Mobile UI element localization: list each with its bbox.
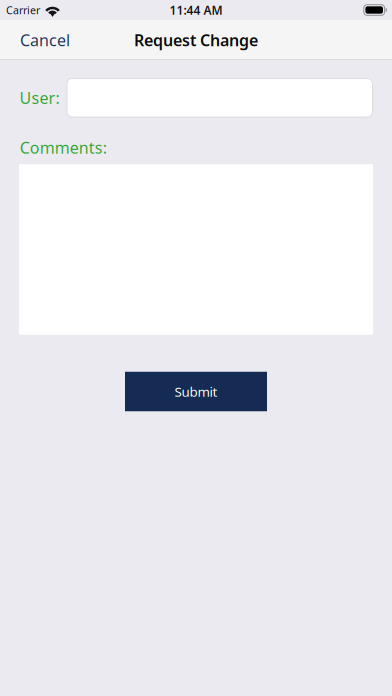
button[interactable]: Cancel	[0, 18, 84, 62]
staticText: Cancel	[20, 29, 70, 51]
staticText: 11:44 AM	[169, 2, 222, 18]
staticText: Carrier	[6, 3, 40, 17]
button[interactable]: Submit	[125, 372, 267, 411]
staticText: User:	[19, 87, 59, 108]
button[interactable]: User name field	[67, 78, 372, 117]
staticText: Submit	[174, 383, 217, 400]
staticText: Comments:	[20, 137, 107, 158]
staticText: Request Change	[134, 29, 258, 51]
